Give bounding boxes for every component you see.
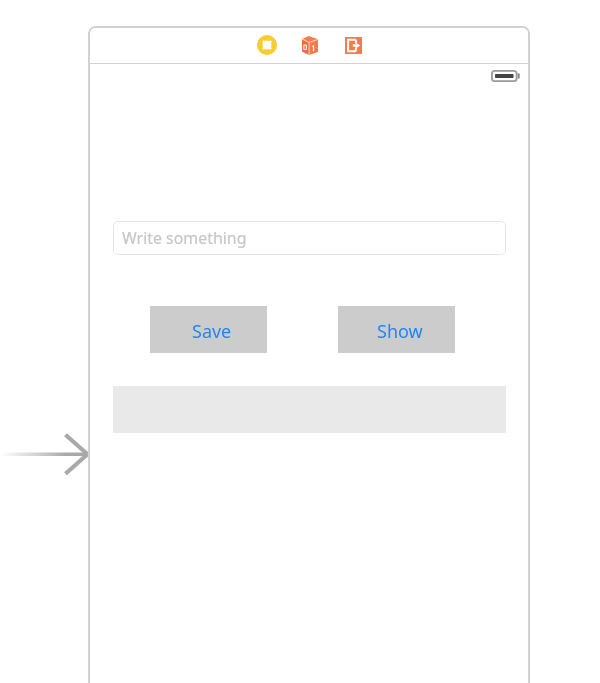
- button[interactable]: Build variant: [302, 36, 318, 55]
- button[interactable]: Show: [338, 306, 455, 353]
- staticText: Show: [377, 319, 423, 344]
- button[interactable]: Save: [150, 306, 267, 353]
- button[interactable]: Run app: [345, 37, 362, 54]
- button[interactable]: Write something: [113, 221, 506, 255]
- staticText: Write something: [122, 227, 247, 249]
- button[interactable]: Chip: [257, 35, 277, 55]
- staticText: Save: [192, 319, 232, 344]
